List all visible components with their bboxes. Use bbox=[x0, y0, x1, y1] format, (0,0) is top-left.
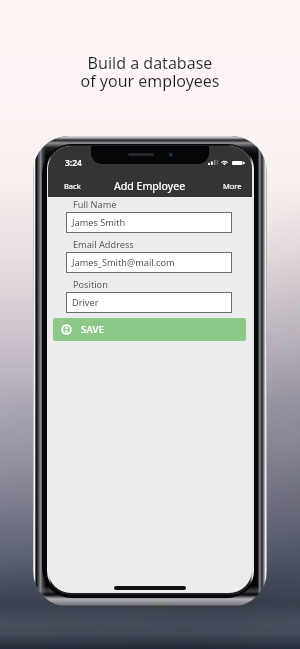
staticText: James Smith bbox=[72, 216, 126, 229]
staticText: Build a database of your employees bbox=[80, 52, 220, 91]
staticText: James_Smith@mail.com bbox=[72, 256, 175, 269]
staticText: Position bbox=[73, 278, 108, 291]
button[interactable]: James_Smith@mail.com bbox=[66, 252, 232, 273]
staticText: Add Employee bbox=[114, 179, 186, 193]
staticText: Email Address bbox=[73, 238, 134, 251]
staticText: SAVE bbox=[81, 323, 105, 336]
button[interactable]: Driver bbox=[66, 292, 232, 313]
button[interactable]: SAVE bbox=[53, 318, 246, 341]
staticText: 3:24 bbox=[65, 157, 82, 169]
staticText: Back bbox=[64, 181, 81, 191]
button[interactable]: Back bbox=[48, 177, 93, 195]
button[interactable]: James Smith bbox=[66, 212, 232, 233]
button[interactable]: More bbox=[211, 177, 252, 195]
staticText: More bbox=[223, 181, 242, 191]
staticText: Full Name bbox=[73, 198, 117, 211]
staticText: Driver bbox=[72, 296, 99, 309]
